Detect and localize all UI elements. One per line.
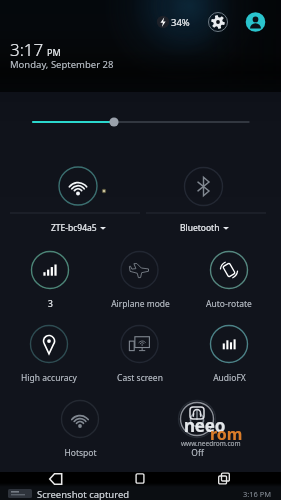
button[interactable]	[10, 321, 88, 379]
staticText: AudioFX	[213, 372, 246, 384]
button[interactable]: Wi-Fi	[57, 165, 99, 207]
staticText: High accuracy	[21, 372, 77, 384]
button[interactable]	[165, 396, 229, 454]
button[interactable]	[18, 247, 82, 305]
button[interactable]: Bluetooth	[180, 222, 229, 234]
button[interactable]	[48, 396, 112, 454]
staticText: Monday, September 28	[10, 58, 114, 71]
staticText: www.needrom.com	[181, 439, 241, 448]
staticText: ZTE-bc94a5	[51, 222, 97, 234]
staticText: Bluetooth	[180, 222, 220, 234]
staticText: Airplane mode	[111, 298, 170, 310]
button[interactable]	[197, 321, 261, 379]
staticText: 3:17	[10, 38, 44, 61]
staticText: PM	[47, 46, 61, 58]
staticText: 3	[48, 298, 53, 310]
staticText: Off	[191, 447, 204, 459]
button[interactable]: Back	[23, 467, 93, 485]
button[interactable]	[100, 247, 180, 305]
button[interactable]: Bluetooth	[183, 165, 225, 207]
staticText: 34%	[171, 16, 190, 29]
staticText: Hotspot	[64, 447, 97, 459]
staticText: neeo	[184, 414, 226, 437]
staticText: Screenshot captured	[37, 488, 130, 500]
staticText: Auto-rotate	[206, 298, 252, 310]
button[interactable]: ZTE-bc94a5	[51, 222, 106, 234]
button[interactable]: Home	[106, 467, 176, 485]
button[interactable]	[105, 321, 175, 379]
button[interactable]: User profile	[244, 10, 268, 34]
button[interactable]: Settings	[206, 10, 230, 34]
staticText: rom	[210, 423, 243, 445]
staticText: 3:16 PM	[243, 489, 272, 499]
button[interactable]: Recent apps	[190, 467, 260, 485]
staticText: Cast screen	[117, 372, 163, 384]
button[interactable]	[193, 247, 265, 305]
